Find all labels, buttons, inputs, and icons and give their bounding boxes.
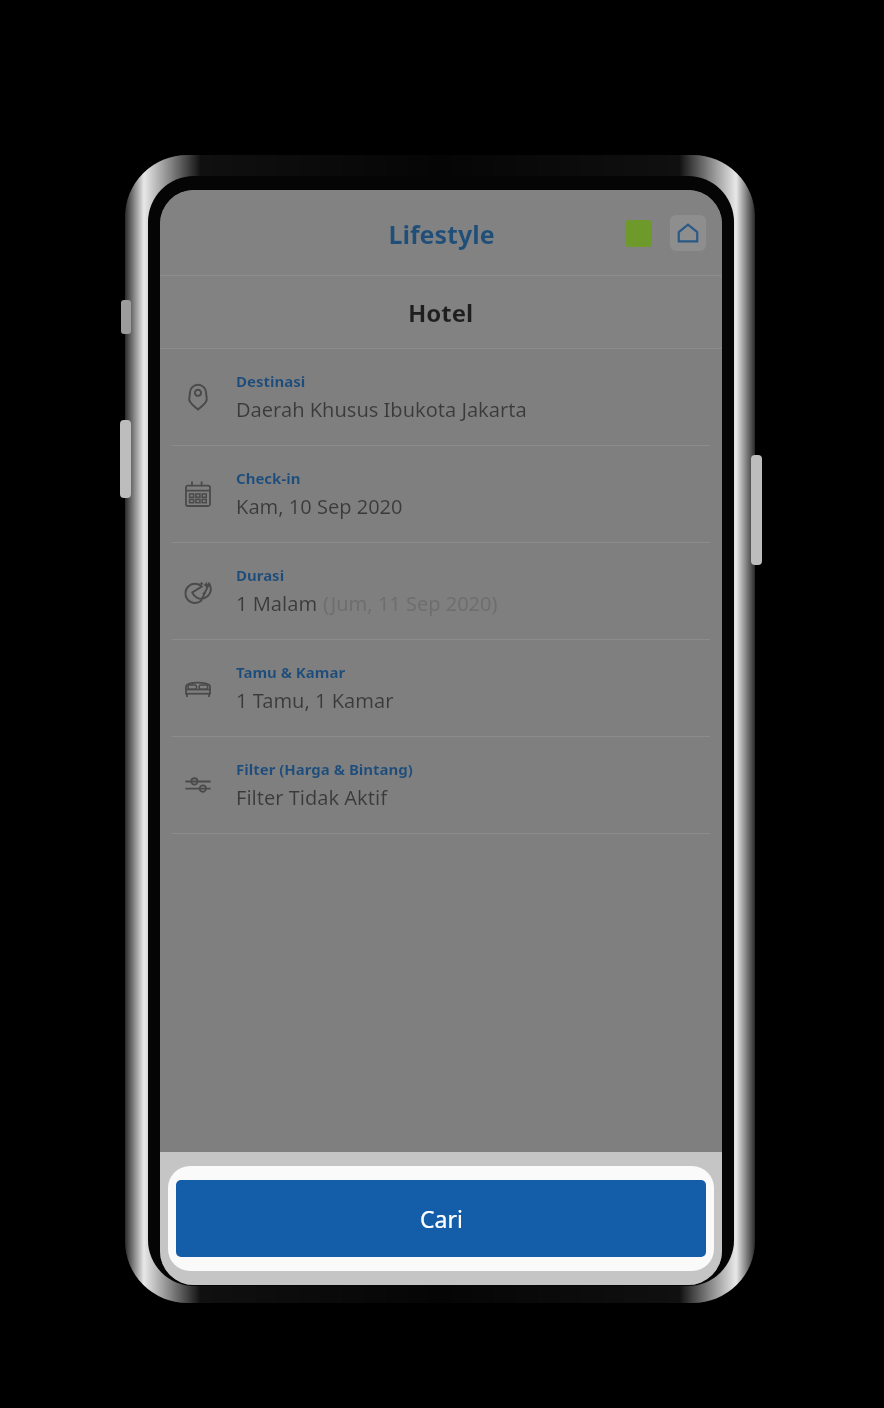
staticText: 1 Malam: [236, 590, 323, 617]
button[interactable]: Tamu & Kamar: [160, 640, 722, 736]
button[interactable]: Home: [670, 215, 706, 251]
button[interactable]: Destinasi: [160, 349, 722, 445]
staticText: Destinasi: [236, 371, 306, 391]
staticText: (Jum, 11 Sep 2020): [323, 590, 498, 617]
staticText: Kam, 10 Sep 2020: [236, 493, 403, 520]
button[interactable]: Durasi: [160, 543, 722, 639]
staticText: Hotel: [408, 296, 474, 329]
staticText: Filter Tidak Aktif: [236, 784, 388, 811]
staticText: Cari: [420, 1203, 463, 1234]
staticText: Check-in: [236, 468, 301, 488]
staticText: Lifestyle: [388, 217, 495, 251]
button[interactable]: Status: [625, 220, 652, 247]
button[interactable]: Cari: [176, 1180, 706, 1257]
staticText: Tamu & Kamar: [236, 662, 346, 682]
staticText: Durasi: [236, 565, 285, 585]
staticText: Filter (Harga & Bintang): [236, 759, 413, 779]
button[interactable]: Check-in: [160, 446, 722, 542]
button[interactable]: Filter (Harga & Bintang): [160, 737, 722, 833]
staticText: 1 Tamu, 1 Kamar: [236, 687, 394, 714]
staticText: Daerah Khusus Ibukota Jakarta: [236, 396, 527, 423]
